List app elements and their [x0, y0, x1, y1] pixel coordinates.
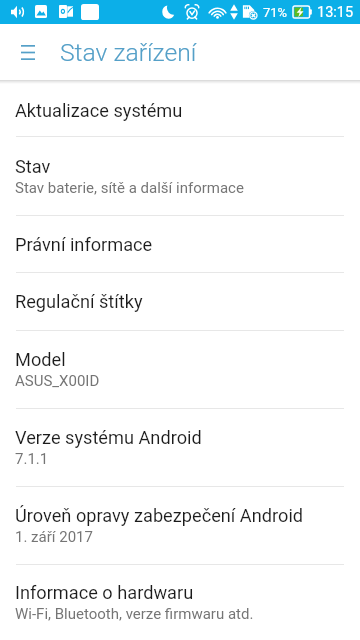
button[interactable]: Stav	[0, 137, 360, 216]
staticText: ASUS_X00ID	[15, 372, 100, 390]
staticText: Model	[15, 349, 66, 370]
staticText: 1. září 2017	[15, 528, 93, 546]
staticText: 7.1.1	[15, 450, 49, 468]
staticText: 71%	[263, 5, 288, 20]
button[interactable]: Regulační štítky	[0, 273, 360, 331]
button[interactable]: Aktualizace systému	[0, 84, 360, 137]
staticText: 13:15	[317, 4, 354, 21]
staticText: Informace o hardwaru	[15, 582, 194, 603]
staticText: Právní informace	[15, 234, 153, 255]
staticText: Stav zařízení	[60, 38, 197, 67]
button[interactable]: Informace o hardwaru	[0, 565, 360, 640]
staticText: Wi-Fi, Bluetooth, verze firmwaru atd.	[15, 605, 254, 623]
staticText: Verze systému Android	[15, 427, 202, 448]
button[interactable]: Právní informace	[0, 216, 360, 273]
staticText: Stav baterie, sítě a další informace	[15, 179, 244, 197]
button[interactable]: Open navigation drawer	[14, 38, 42, 66]
staticText: Úroveň opravy zabezpečení Android	[15, 505, 304, 526]
staticText: Aktualizace systému	[15, 100, 183, 121]
button[interactable]: Model	[0, 331, 360, 409]
button[interactable]: Verze systému Android	[0, 409, 360, 487]
button[interactable]: Úroveň opravy zabezpečení Android	[0, 487, 360, 565]
staticText: Regulační štítky	[15, 291, 143, 312]
staticText: Stav	[15, 156, 51, 177]
